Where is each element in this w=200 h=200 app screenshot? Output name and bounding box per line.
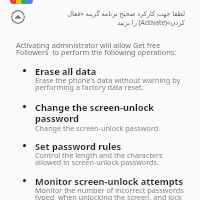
button[interactable]: Collapse details [11,10,25,24]
button[interactable]: Monitor screen-unlock attempts [35,175,187,188]
staticText: کردن»(Activate) را بزنید [40,18,185,27]
staticText: Activating administrator will allow Get … [16,40,178,57]
staticText: Monitor the number of incorrect password… [35,185,187,200]
staticText: Control the length and the characters al… [35,150,180,167]
staticText: لطفا جهت کارکرد صحیح برنامه گزینه «فعال [40,9,185,18]
button[interactable]: Change the screen-unlock password [35,101,159,124]
staticText: Erase the phone's data without warning b… [35,75,181,92]
button[interactable]: Set password rules [35,140,187,153]
button[interactable]: Erase all data [35,65,187,78]
staticText: Change the screen-unlock password. [35,123,187,133]
